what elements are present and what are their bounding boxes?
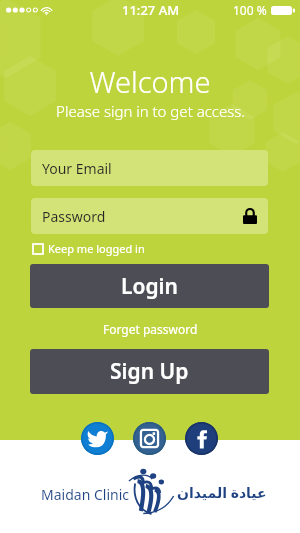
- button[interactable]: Twitter: [81, 422, 114, 455]
- staticText: Forget password: [103, 321, 198, 337]
- staticText: Password: [42, 207, 106, 226]
- button[interactable]: Password: [31, 198, 268, 234]
- staticText: Maidan Clinic: [41, 485, 129, 504]
- staticText: Sign Up: [110, 357, 189, 386]
- staticText: Please sign in to get access.: [56, 101, 245, 121]
- staticText: Login: [121, 272, 178, 301]
- staticText: 11:27 AM: [122, 1, 180, 19]
- staticText: 100 %: [233, 2, 267, 18]
- staticText: Welcome: [89, 62, 211, 101]
- button[interactable]: Sign Up: [30, 349, 269, 394]
- button[interactable]: Login: [30, 264, 269, 308]
- button[interactable]: Instagram: [133, 422, 166, 455]
- button[interactable]: Keep me logged in: [31, 239, 147, 258]
- staticText: Your Email: [42, 159, 112, 178]
- button[interactable]: Facebook: [185, 422, 218, 455]
- button[interactable]: Forget password: [93, 317, 208, 341]
- button[interactable]: Your Email: [31, 150, 268, 186]
- staticText: Keep me logged in: [48, 241, 145, 256]
- staticText: عيادة الميدان: [177, 483, 267, 502]
